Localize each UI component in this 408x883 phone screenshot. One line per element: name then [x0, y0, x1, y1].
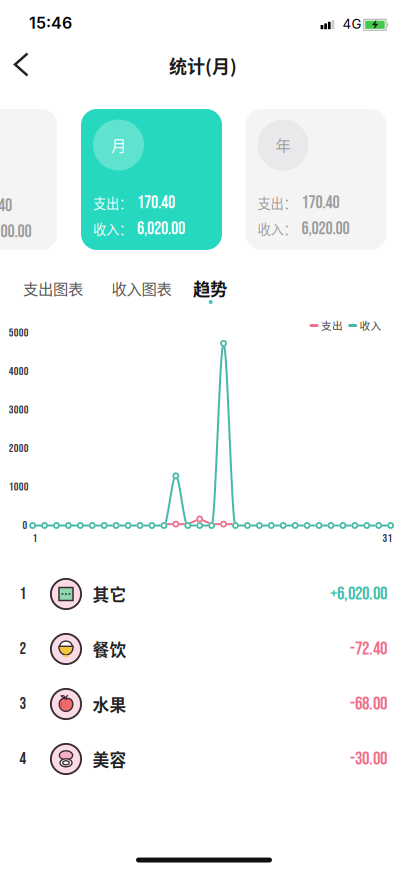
staticText: 支出：: [257, 193, 296, 212]
staticText: 支出图表: [23, 277, 83, 299]
staticText: 收入：: [257, 219, 296, 238]
button[interactable]: 收入图表: [101, 271, 181, 305]
staticText: 4: [19, 749, 26, 769]
button[interactable]: 支出图表: [13, 271, 93, 305]
staticText: 170.40: [137, 192, 175, 214]
staticText: 支出：: [93, 193, 132, 212]
staticText: 40: [0, 195, 12, 217]
staticText: 6,020.00: [301, 218, 349, 240]
staticText: 美容: [92, 747, 126, 771]
staticText: 收入: [360, 317, 382, 333]
button[interactable]: 3: [0, 676, 408, 731]
button[interactable]: 40: [0, 109, 57, 250]
staticText: 170.40: [301, 192, 339, 214]
staticText: 3000: [9, 403, 29, 417]
button[interactable]: 2: [0, 621, 408, 676]
staticText: 4000: [9, 364, 29, 378]
button[interactable]: 年: [245, 109, 386, 250]
staticText: -68.00: [350, 693, 387, 715]
staticText: 收入：: [93, 219, 132, 238]
staticText: 1: [19, 584, 26, 604]
staticText: 15:46: [29, 13, 72, 33]
button[interactable]: 4: [0, 731, 408, 786]
staticText: 3: [19, 694, 26, 714]
staticText: 支出: [321, 317, 343, 333]
staticText: 31: [382, 531, 392, 545]
staticText: 趋势: [193, 275, 227, 301]
staticText: 1000: [9, 480, 29, 494]
staticText: 00.00: [0, 221, 31, 243]
staticText: 餐饮: [92, 637, 126, 661]
staticText: 5000: [9, 326, 29, 340]
staticText: 年: [275, 133, 290, 156]
staticText: 4G: [342, 16, 361, 32]
staticText: 水果: [92, 692, 126, 716]
staticText: 6,020.00: [137, 218, 185, 240]
staticText: 1: [32, 531, 37, 545]
staticText: 2000: [9, 441, 29, 455]
staticText: 0: [22, 518, 27, 532]
staticText: -30.00: [350, 748, 387, 770]
button[interactable]: 趋势: [180, 271, 240, 305]
staticText: 收入图表: [111, 277, 171, 299]
button[interactable]: 月: [81, 109, 222, 250]
staticText: 月: [111, 133, 126, 156]
staticText: 其它: [92, 582, 126, 606]
button[interactable]: Back: [0, 44, 44, 85]
staticText: 统计(月): [169, 52, 237, 79]
staticText: 2: [19, 639, 26, 659]
button[interactable]: 1: [0, 566, 408, 621]
staticText: -72.40: [350, 638, 387, 660]
staticText: +6,020.00: [330, 583, 387, 605]
